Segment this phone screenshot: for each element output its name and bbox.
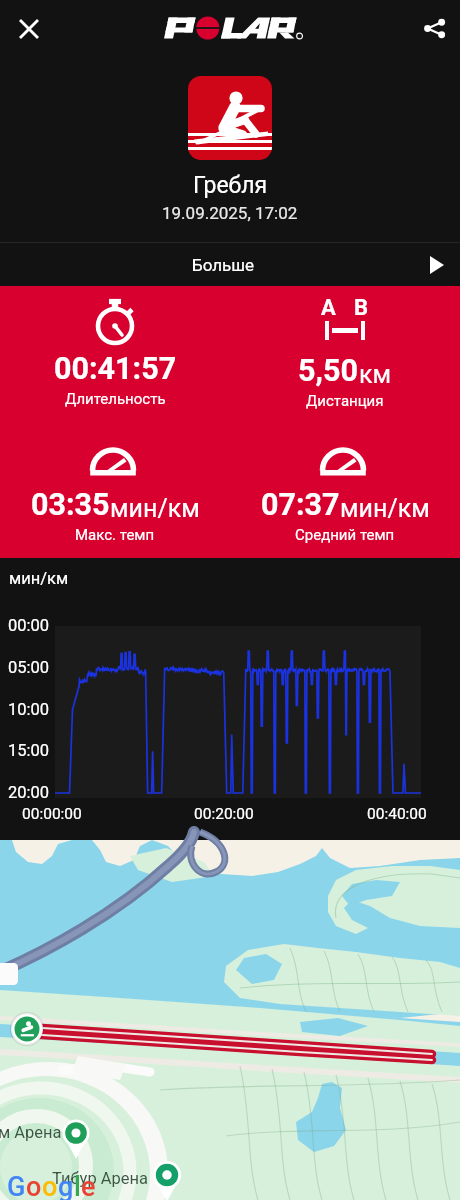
staticText: Макс. темп — [75, 526, 155, 544]
staticText: 20:00 — [8, 783, 50, 802]
staticText: Дистанция — [306, 392, 384, 410]
staticText: o — [26, 1171, 42, 1200]
staticText: Средний темп — [295, 526, 395, 544]
staticText: Тибур Арена — [52, 1169, 149, 1188]
staticText: 00:00:00 — [22, 805, 82, 823]
staticText: 00:40:00 — [367, 805, 427, 823]
button[interactable]: A — [230, 286, 460, 410]
staticText: 00:00 — [8, 616, 50, 635]
button[interactable]: Share — [415, 9, 454, 48]
button[interactable]: 00:41:57 — [0, 286, 230, 408]
staticText: км — [359, 360, 392, 389]
staticText: Гребля — [193, 172, 268, 199]
staticText: мин/км — [9, 569, 69, 588]
staticText: 10:00 — [8, 700, 50, 719]
staticText: A — [321, 295, 336, 321]
staticText: мин/км — [340, 494, 430, 523]
staticText: 5,50 — [298, 353, 359, 389]
staticText: 05:00 — [8, 658, 50, 677]
button[interactable]: 07:37 — [230, 422, 460, 544]
staticText: G — [7, 1171, 26, 1200]
staticText: мин/км — [110, 494, 200, 523]
staticText: 07:37 — [261, 487, 340, 523]
staticText: Больше — [192, 255, 255, 275]
staticText: 15:00 — [8, 741, 50, 760]
button[interactable]: 03:35 — [0, 422, 230, 544]
staticText: g — [58, 1171, 74, 1200]
staticText: 00:20:00 — [194, 805, 254, 823]
staticText: l — [74, 1171, 81, 1200]
staticText: e — [81, 1171, 96, 1200]
button[interactable]: Больше — [0, 243, 460, 286]
staticText: м Арена — [0, 1123, 62, 1142]
staticText: o — [42, 1171, 58, 1200]
staticText: Длительность — [65, 390, 166, 408]
button[interactable]: Close — [9, 9, 48, 48]
staticText: 00:41:57 — [54, 351, 177, 387]
staticText: 19.09.2025, 17:02 — [162, 203, 298, 223]
staticText: 03:35 — [31, 487, 110, 523]
staticText: B — [354, 295, 369, 321]
